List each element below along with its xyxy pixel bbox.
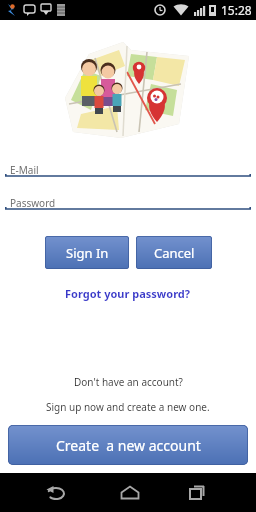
button[interactable] xyxy=(173,473,221,512)
button[interactable]: Sign In xyxy=(45,236,129,269)
staticText: Sign up now and create a new one. xyxy=(46,400,210,414)
button[interactable]: Cancel xyxy=(136,236,212,269)
button[interactable] xyxy=(32,473,80,512)
staticText: Don't have an account? xyxy=(74,375,183,389)
staticText: Password xyxy=(10,196,56,210)
staticText: Sign In xyxy=(66,244,109,262)
button[interactable]: Forgot your password? xyxy=(65,286,191,301)
staticText: Cancel xyxy=(154,244,195,262)
staticText: Create a new account xyxy=(56,436,201,455)
staticText: E-Mail xyxy=(10,163,39,177)
staticText: 15:28 xyxy=(221,2,252,18)
button[interactable] xyxy=(106,473,154,512)
button[interactable]: Create a new account xyxy=(8,425,248,465)
